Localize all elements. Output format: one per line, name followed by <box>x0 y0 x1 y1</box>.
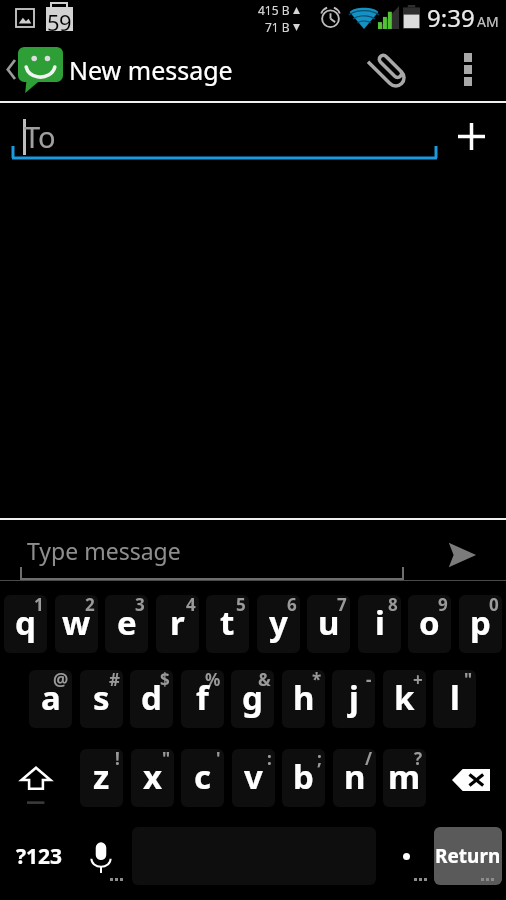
button[interactable]: 1 <box>4 595 47 653</box>
staticText: t <box>220 600 235 645</box>
staticText: w <box>62 600 91 645</box>
button[interactable]: More options <box>440 38 496 101</box>
staticText: : <box>267 749 272 770</box>
button[interactable]: " <box>131 749 174 807</box>
button[interactable]: " <box>433 670 476 728</box>
button[interactable]: * <box>282 670 325 728</box>
staticText: * <box>312 670 322 691</box>
staticText: j <box>349 675 359 720</box>
staticText: h <box>293 675 315 720</box>
button[interactable]: # <box>80 670 123 728</box>
staticText: 9:39 <box>427 1 475 34</box>
staticText: q <box>15 600 36 645</box>
staticText: k <box>394 675 415 720</box>
button[interactable]: ; <box>282 749 325 807</box>
button[interactable]: 4 <box>156 595 199 653</box>
staticText: y <box>269 600 288 645</box>
staticText: ? <box>414 749 423 770</box>
button[interactable]: + <box>383 670 426 728</box>
button[interactable]: 3 <box>105 595 148 653</box>
staticText: ; <box>317 749 322 770</box>
staticText: New message <box>69 53 233 87</box>
staticText: 4 <box>186 595 196 616</box>
staticText: Return <box>435 843 501 869</box>
staticText: e <box>117 600 137 645</box>
button[interactable]: 8 <box>358 595 401 653</box>
staticText: r <box>170 600 185 645</box>
staticText: d <box>141 675 162 720</box>
button[interactable]: 5 <box>206 595 249 653</box>
staticText: n <box>344 754 366 799</box>
staticText: 9 <box>438 595 448 616</box>
staticText: 59 <box>47 7 72 31</box>
button[interactable]: / <box>333 749 376 807</box>
staticText: @ <box>53 670 69 691</box>
button[interactable]: - <box>332 670 375 728</box>
staticText: 6 <box>287 595 297 616</box>
button[interactable]: % <box>181 670 224 728</box>
staticText: b <box>293 754 314 799</box>
staticText: " <box>162 749 171 770</box>
staticText: a <box>41 675 61 720</box>
staticText: m <box>388 754 421 799</box>
staticText: % <box>205 670 221 691</box>
staticText: 71 B <box>265 19 290 35</box>
button[interactable]: Add recipient <box>440 107 502 165</box>
staticText: u <box>318 600 340 645</box>
button[interactable]: Return <box>434 827 502 885</box>
staticText: x <box>143 754 163 799</box>
button[interactable]: ?123 <box>2 827 76 885</box>
button[interactable]: 7 <box>307 595 350 653</box>
staticText: i <box>375 600 385 645</box>
button[interactable]: Navigate up <box>0 38 63 101</box>
staticText: & <box>258 670 271 691</box>
staticText: 415 B <box>258 2 290 18</box>
button[interactable]: Period <box>378 827 434 885</box>
button[interactable]: Voice input <box>73 829 129 887</box>
staticText: ! <box>115 749 120 770</box>
button[interactable]: $ <box>130 670 173 728</box>
staticText: 7 <box>337 595 347 616</box>
staticText: z <box>93 754 110 799</box>
staticText: $ <box>160 670 170 691</box>
staticText: - <box>366 670 372 691</box>
button[interactable]: ? <box>383 749 426 807</box>
button[interactable]: : <box>232 749 275 807</box>
staticText: 3 <box>135 595 145 616</box>
staticText: g <box>242 675 263 720</box>
button[interactable]: @ <box>29 670 72 728</box>
staticText: p <box>470 600 491 645</box>
button[interactable]: Shift <box>2 749 76 807</box>
staticText: s <box>93 675 110 720</box>
staticText: ' <box>216 749 221 770</box>
staticText: c <box>194 754 212 799</box>
button[interactable]: 6 <box>257 595 300 653</box>
button[interactable]: ' <box>181 749 224 807</box>
staticText: l <box>450 675 460 720</box>
staticText: / <box>365 749 373 770</box>
staticText: 5 <box>236 595 246 616</box>
button[interactable]: & <box>231 670 274 728</box>
staticText: Type message <box>27 535 181 566</box>
staticText: f <box>196 675 209 720</box>
staticText: 8 <box>388 595 398 616</box>
button[interactable]: Attach <box>358 38 418 101</box>
staticText: o <box>419 600 440 645</box>
staticText: # <box>109 670 120 691</box>
staticText: 1 <box>34 595 44 616</box>
button[interactable]: ! <box>80 749 123 807</box>
staticText: To <box>24 117 56 156</box>
staticText: " <box>464 670 473 691</box>
staticText: 0 <box>489 595 499 616</box>
button[interactable]: 9 <box>408 595 451 653</box>
staticText: ?123 <box>16 842 63 871</box>
staticText: + <box>413 670 423 691</box>
staticText: v <box>244 754 263 799</box>
button[interactable]: 0 <box>459 595 502 653</box>
button[interactable]: Backspace <box>432 749 506 807</box>
button[interactable]: Send <box>432 527 492 583</box>
button[interactable]: 2 <box>55 595 98 653</box>
staticText: 2 <box>85 595 95 616</box>
staticText: AM <box>477 12 499 31</box>
